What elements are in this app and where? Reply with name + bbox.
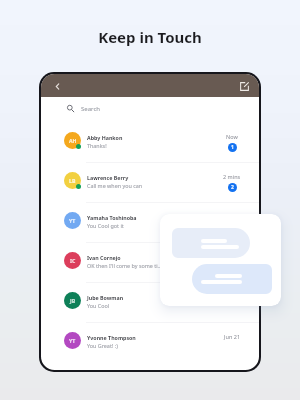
staticText: You Cool (87, 302, 110, 309)
staticText: Yamaha Toshinoba (87, 214, 137, 221)
staticText: Keep in Touch (0, 27, 300, 47)
staticText: Lawrence Berry (87, 174, 129, 181)
button[interactable]: YT (41, 320, 259, 360)
staticText: 1 (231, 144, 234, 151)
staticText: Thanks! (87, 142, 107, 149)
staticText: AH (69, 137, 77, 144)
button[interactable]: IC (41, 240, 259, 280)
staticText: Abby Hankon (87, 134, 123, 141)
button[interactable]: Search (41, 97, 259, 120)
staticText: Call me when you can (87, 182, 143, 189)
staticText: YT (69, 337, 76, 344)
staticText: YT (69, 217, 76, 224)
staticText: 2 (231, 184, 234, 191)
button[interactable]: Back (50, 79, 64, 93)
staticText: Jube Bowman (87, 294, 124, 301)
staticText: OK then I'll come by some ti... (87, 262, 162, 269)
staticText: 2 mins (223, 173, 241, 180)
staticText: Ivan Cornejo (87, 254, 121, 261)
staticText: You Cool got it (87, 222, 124, 229)
button[interactable]: JB (41, 280, 259, 320)
staticText: You Great! :) (87, 342, 118, 349)
staticText: Now (226, 133, 238, 140)
staticText: IC (70, 257, 76, 264)
staticText: Jun 21 (224, 333, 241, 340)
button[interactable]: AH (41, 120, 259, 160)
button[interactable]: LB (41, 160, 259, 200)
button[interactable]: YT (41, 200, 259, 240)
staticText: Yvonne Thompson (87, 334, 136, 341)
staticText: LB (69, 177, 76, 184)
staticText: Search (81, 105, 100, 113)
staticText: JB (70, 297, 76, 304)
button[interactable]: Compose new message (237, 79, 251, 93)
